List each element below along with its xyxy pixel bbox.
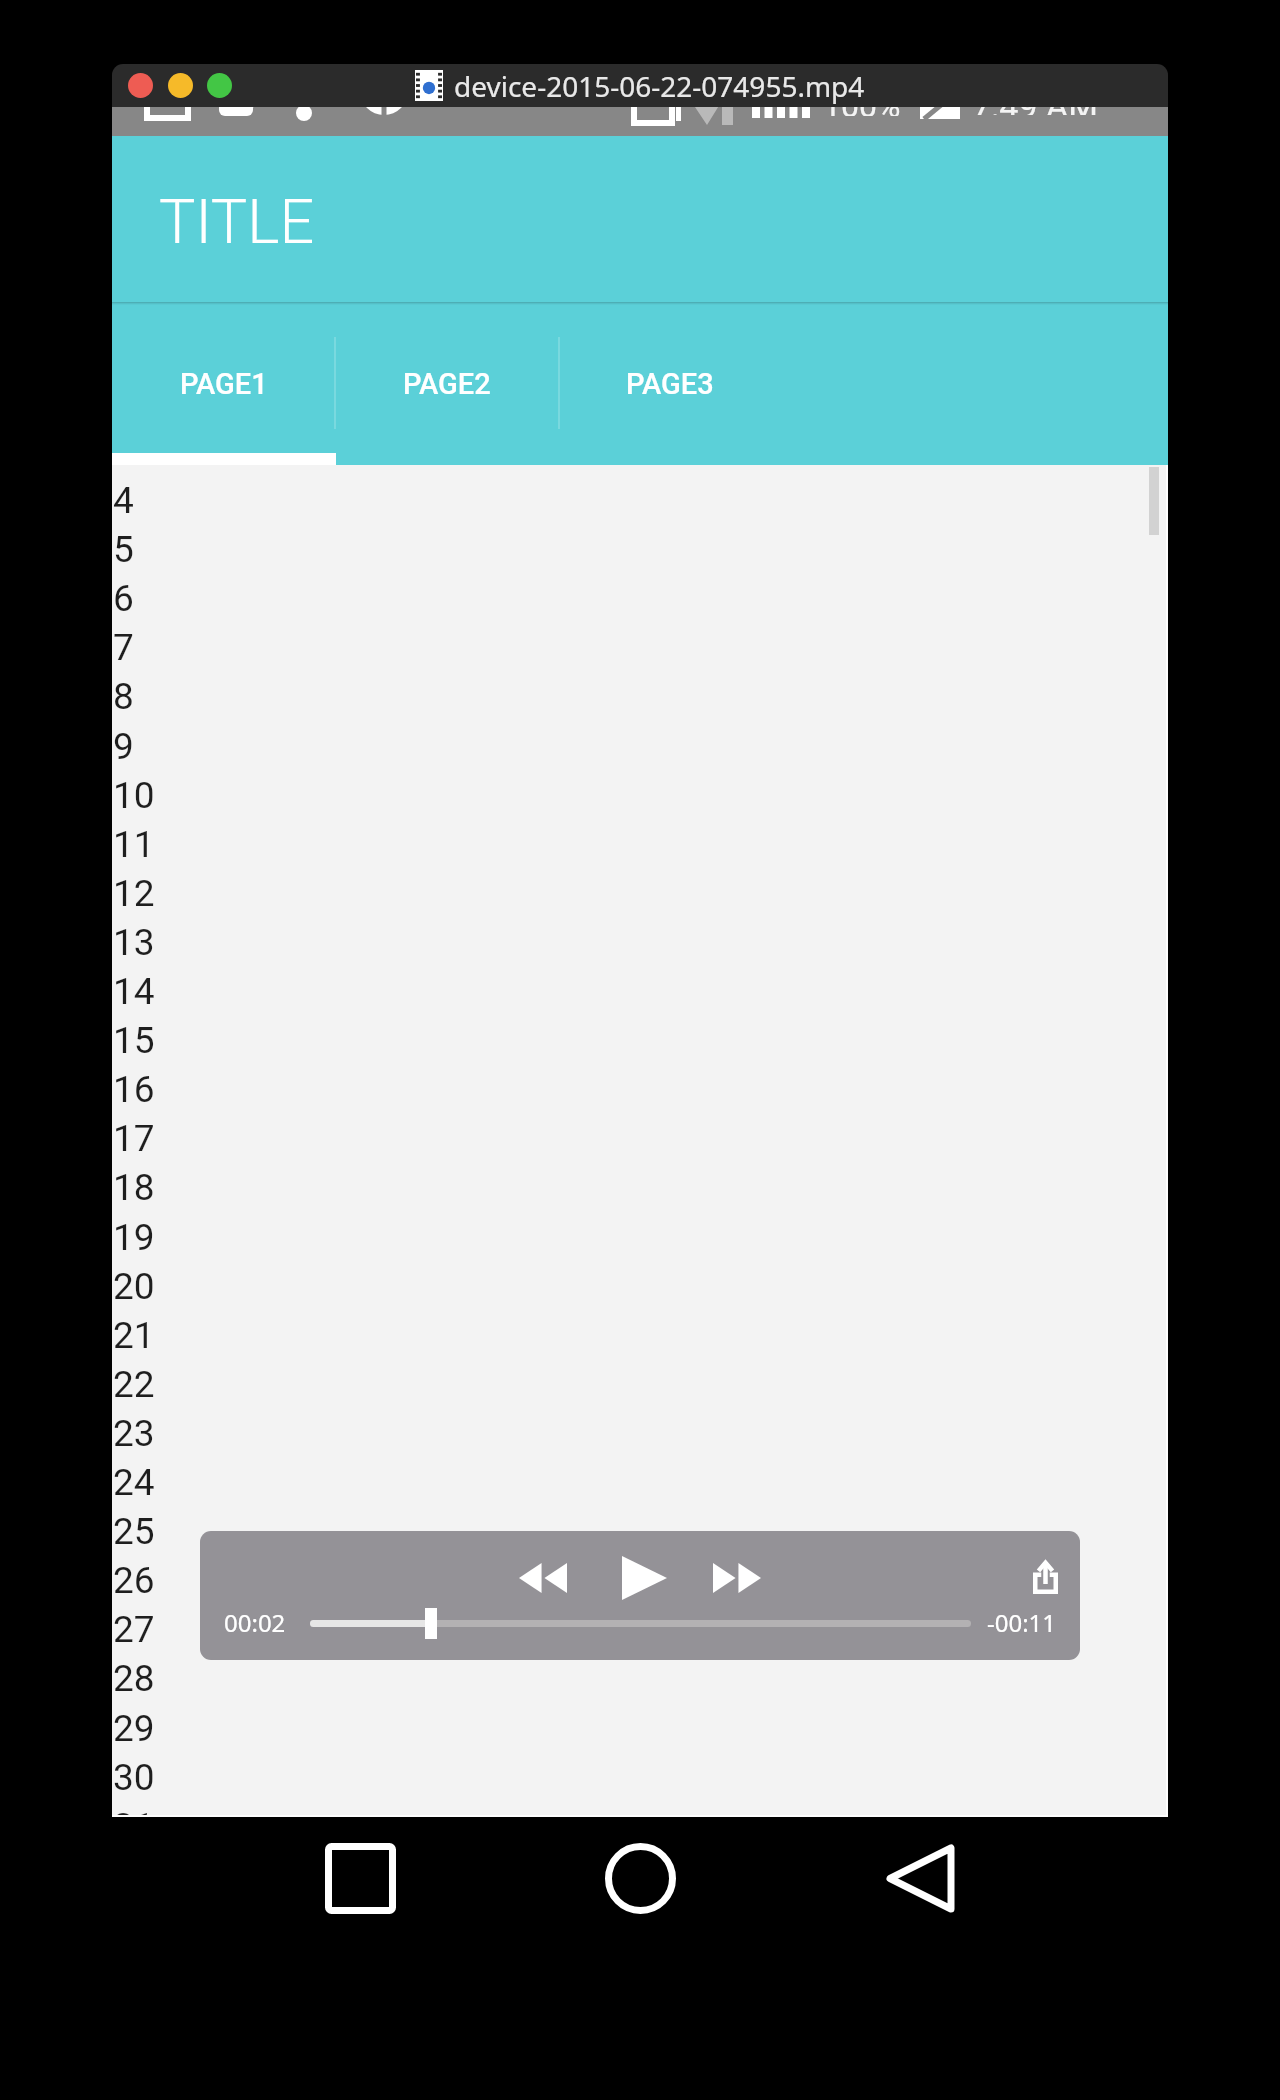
button[interactable] (112, 1556, 1168, 1605)
staticText: 5 (113, 528, 134, 571)
staticText: 24 (113, 1461, 155, 1504)
staticText: 16 (113, 1068, 155, 1111)
staticText: PAGE1 (180, 367, 268, 401)
staticText: 4 (113, 479, 134, 522)
staticText: 18 (113, 1166, 155, 1209)
button[interactable]: PAGE3 (558, 302, 781, 465)
button[interactable] (112, 672, 1168, 721)
staticText: 29 (113, 1707, 155, 1750)
button[interactable] (112, 623, 1168, 672)
button[interactable] (112, 1703, 1168, 1752)
button[interactable]: Share (1033, 1561, 1058, 1594)
button[interactable] (112, 1605, 1168, 1654)
staticText: 23 (113, 1412, 155, 1455)
button[interactable]: Play (622, 1556, 667, 1600)
button[interactable]: Recent apps (325, 1843, 396, 1914)
button[interactable] (112, 1408, 1168, 1457)
button[interactable] (112, 1016, 1168, 1065)
staticText: 20 (113, 1265, 155, 1308)
button[interactable] (112, 1212, 1168, 1261)
button[interactable] (112, 1114, 1168, 1163)
button[interactable]: Close window (128, 73, 153, 98)
staticText: 100% (823, 107, 901, 116)
staticText: device-2015-06-22-074955.mp4 (454, 67, 865, 105)
button[interactable]: Minimise window (168, 73, 193, 98)
button[interactable]: Back (885, 1843, 956, 1914)
staticText: 11 (113, 823, 155, 866)
staticText: 10 (113, 774, 155, 817)
button[interactable] (112, 574, 1168, 623)
staticText: 21 (113, 1314, 155, 1357)
staticText: 14 (113, 970, 155, 1013)
staticText: 6 (113, 577, 134, 620)
staticText: -00:11 (987, 1606, 1057, 1639)
staticText: PAGE2 (403, 367, 491, 401)
staticText: 7:49 AM (972, 107, 1098, 115)
staticText: 7 (113, 626, 134, 669)
button[interactable]: Fast forward (713, 1563, 761, 1593)
button[interactable] (112, 819, 1168, 868)
button[interactable] (112, 1654, 1168, 1703)
staticText: 27 (113, 1608, 155, 1651)
staticText: 30 (113, 1756, 155, 1799)
button[interactable]: PAGE2 (335, 302, 558, 465)
button[interactable] (112, 1507, 1168, 1556)
staticText: 15 (113, 1019, 155, 1062)
button[interactable]: Zoom window (207, 73, 232, 98)
staticText: 00:02 (224, 1606, 286, 1639)
staticText: 13 (113, 921, 155, 964)
staticText: 17 (113, 1117, 155, 1160)
button[interactable]: Home (605, 1843, 676, 1914)
staticText: 31 (113, 1805, 155, 1817)
button[interactable]: PAGE1 (112, 302, 335, 465)
button[interactable] (112, 966, 1168, 1015)
staticText: 25 (113, 1510, 155, 1553)
button[interactable] (112, 1261, 1168, 1310)
button[interactable] (112, 525, 1168, 574)
button[interactable] (112, 1065, 1168, 1114)
button[interactable] (112, 1163, 1168, 1212)
staticText: 19 (113, 1216, 155, 1259)
staticText: 22 (113, 1363, 155, 1406)
button[interactable] (112, 1752, 1168, 1801)
staticText: 8 (113, 675, 134, 718)
staticText: 12 (113, 872, 155, 915)
button[interactable]: Rewind (519, 1563, 567, 1593)
button[interactable] (112, 1457, 1168, 1506)
staticText: TITLE (159, 186, 315, 257)
staticText: 9 (113, 725, 134, 768)
button[interactable] (112, 868, 1168, 917)
button[interactable] (112, 1801, 1168, 1817)
staticText: PAGE3 (626, 367, 714, 401)
button[interactable] (112, 475, 1168, 524)
button[interactable] (112, 917, 1168, 966)
staticText: 26 (113, 1559, 155, 1602)
staticText: 28 (113, 1657, 155, 1700)
button[interactable] (112, 1359, 1168, 1408)
button[interactable] (112, 770, 1168, 819)
button[interactable] (112, 721, 1168, 770)
button[interactable] (112, 1310, 1168, 1359)
